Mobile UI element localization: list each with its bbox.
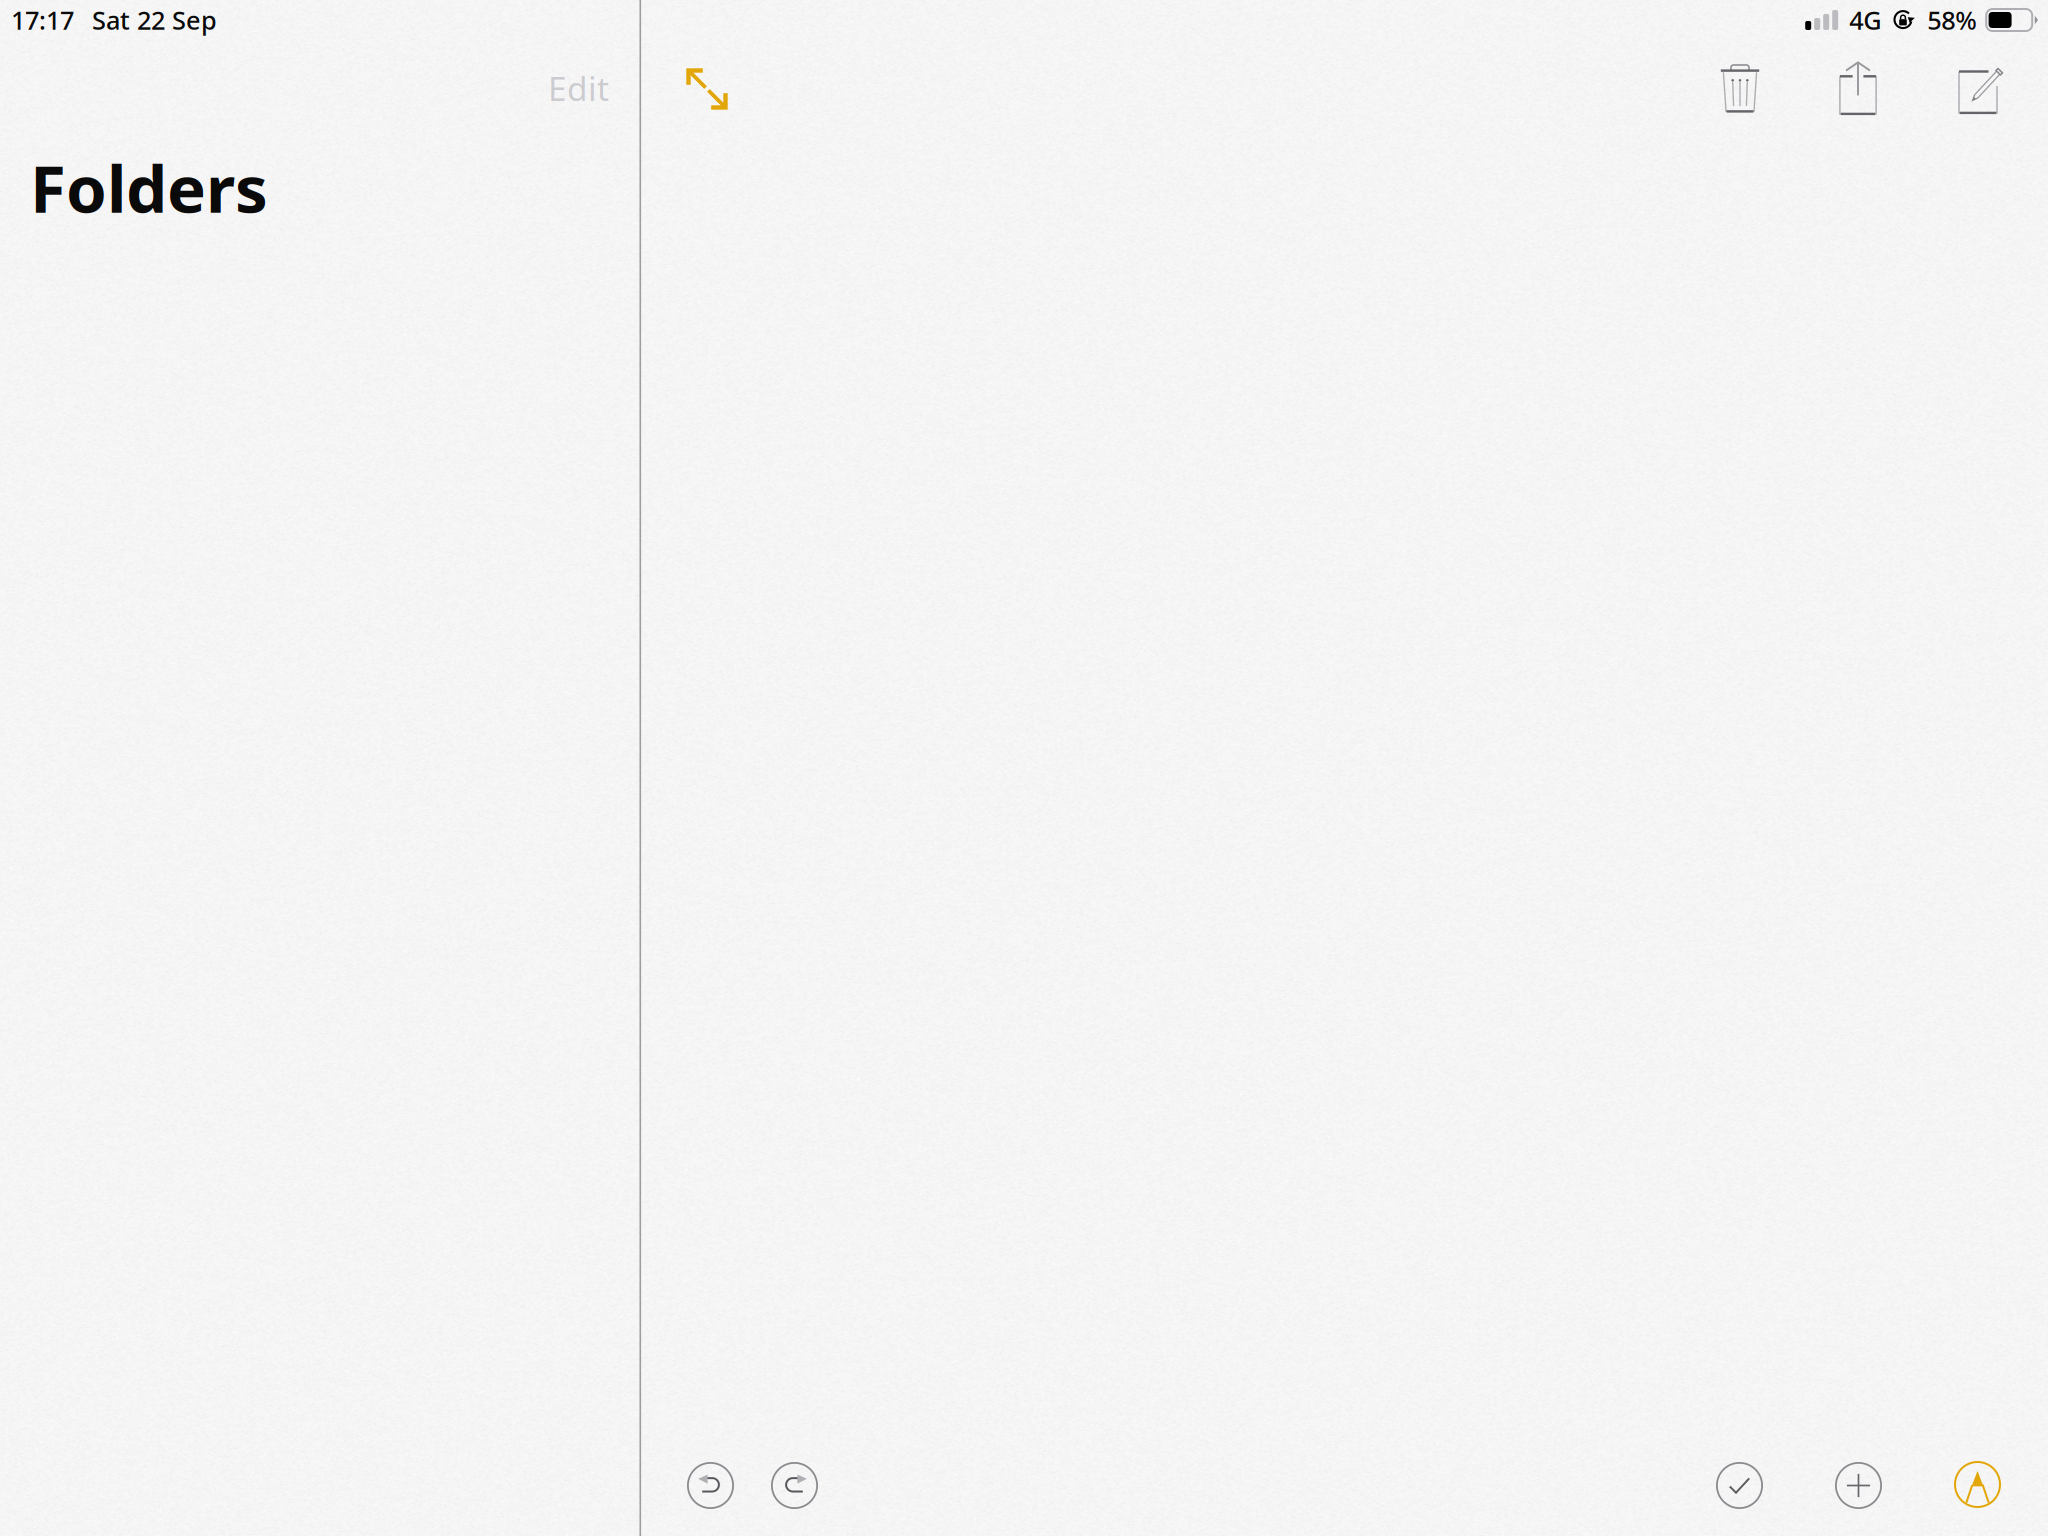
button[interactable]: Done [1704,1450,1775,1521]
button[interactable]: Delete note [1708,51,1772,125]
button[interactable]: Edit [532,54,625,122]
staticText: Folders [30,144,268,231]
button[interactable]: Add attachment [1823,1450,1894,1521]
button[interactable]: New note [1946,51,2016,126]
button[interactable]: Expand note [675,57,739,121]
button[interactable]: Undo [675,1450,746,1521]
button[interactable]: Share [1827,49,1889,127]
staticText: Edit [548,66,609,110]
button[interactable]: Redo [759,1450,830,1521]
button[interactable]: Markup [1943,1450,2012,1519]
staticText: 4G [1849,3,1881,37]
staticText: 58% [1927,3,1977,37]
staticText: 17:17 [11,3,74,37]
staticText: Sat 22 Sep [92,3,217,37]
